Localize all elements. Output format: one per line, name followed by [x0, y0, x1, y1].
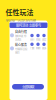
staticText: 门票 — [30, 46, 34, 50]
button[interactable]: 出行 — [29, 34, 35, 41]
staticText: 随时出发 想去就去 — [15, 34, 26, 41]
button[interactable]: 立即领取 — [12, 84, 44, 89]
staticText: 出行 — [30, 38, 34, 41]
staticText: 购物 — [36, 46, 40, 50]
button[interactable]: 更多 — [41, 43, 47, 50]
staticText: 享受每一次出行的乐趣 — [5, 17, 35, 22]
staticText: 自由行程 — [15, 29, 27, 34]
staticText: 专属顾问全程陪同 — [15, 47, 27, 54]
button[interactable]: 购物 — [35, 43, 41, 50]
staticText: 限时活动 立即参与 — [16, 23, 41, 27]
staticText: 立即领取 — [22, 84, 34, 89]
staticText: 更多 — [42, 46, 46, 50]
button[interactable]: 住宿 — [35, 34, 41, 41]
button[interactable]: 贴心服务 — [10, 43, 28, 54]
staticText: 美食 — [42, 38, 46, 41]
button[interactable]: 门票 — [29, 43, 35, 50]
button[interactable]: 自由行程 — [10, 29, 28, 41]
staticText: 任性玩法 — [5, 7, 33, 17]
staticText: 住宿 — [36, 38, 40, 41]
button[interactable]: 美食 — [41, 34, 47, 41]
staticText: 贴心服务 — [15, 43, 27, 47]
